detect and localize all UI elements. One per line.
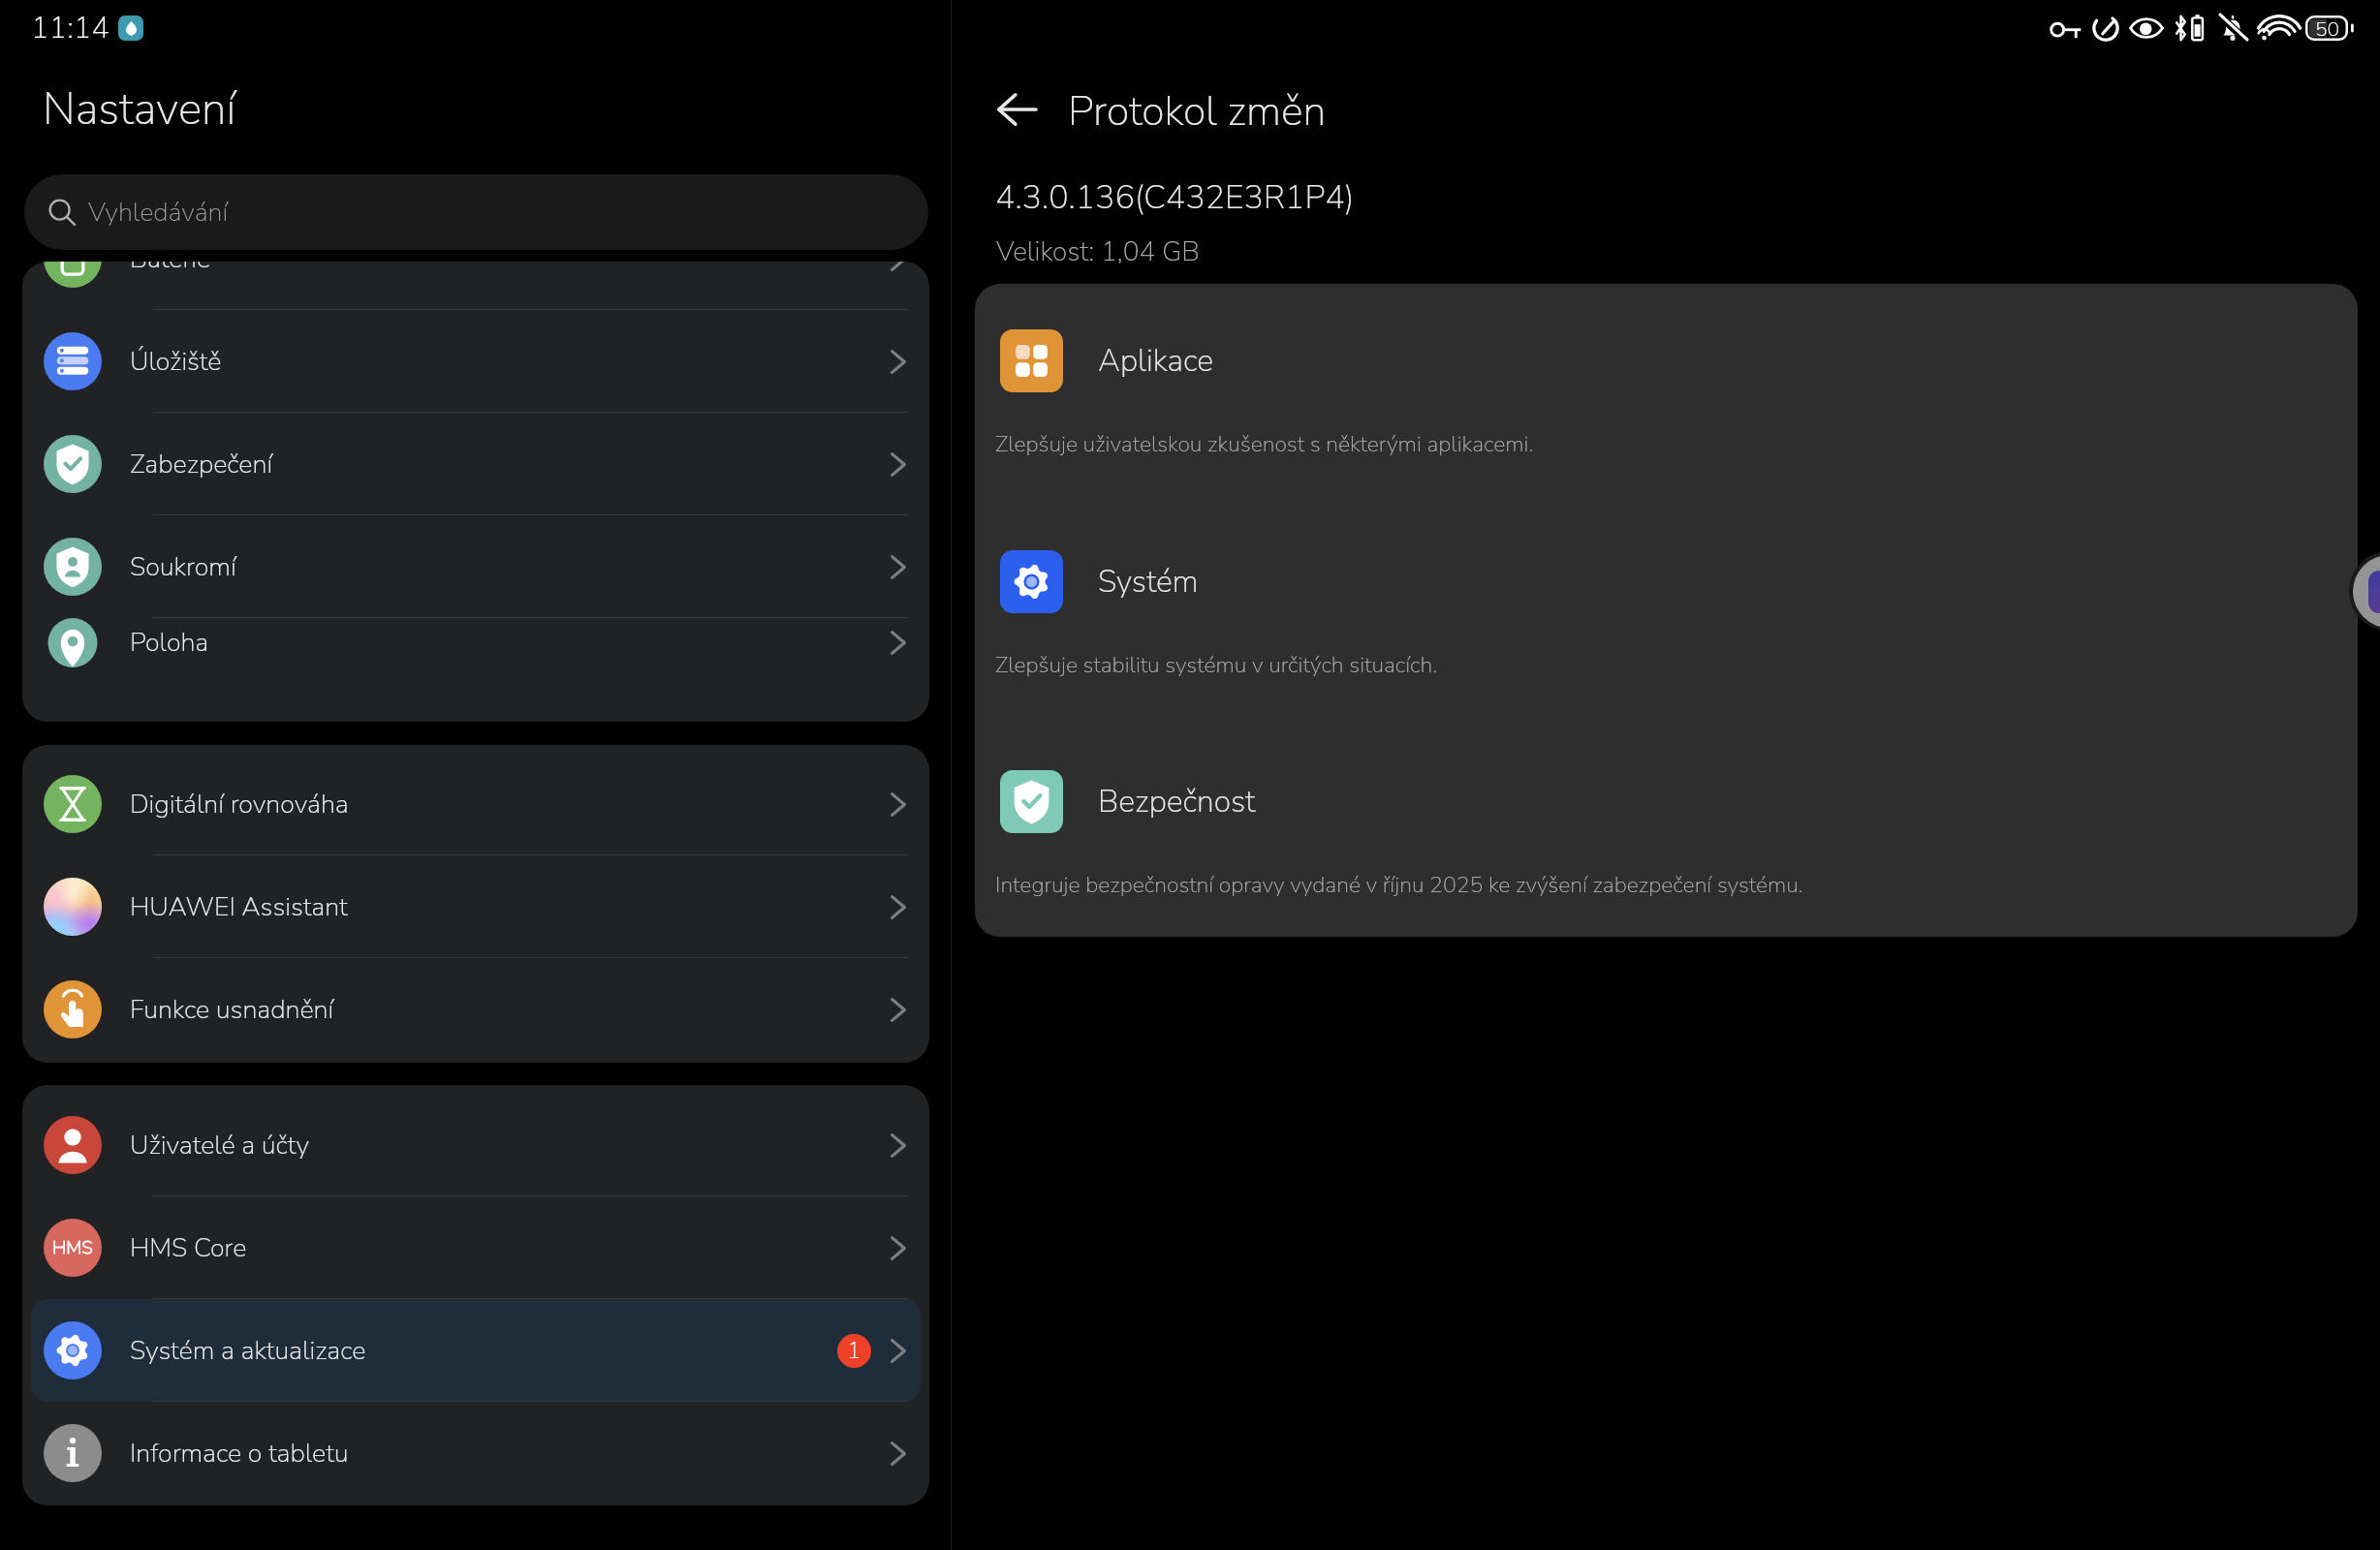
button[interactable]: Back	[974, 78, 1059, 140]
button[interactable]: Úložiště	[22, 310, 929, 413]
staticText: Funkce usnadnění	[130, 992, 334, 1028]
staticText: 1	[847, 1335, 861, 1367]
staticText: Zabezpečení	[130, 447, 273, 482]
button[interactable]: Baterie	[22, 262, 929, 310]
staticText: Zlepšuje uživatelskou zkušenost s někter…	[995, 429, 2342, 459]
button[interactable]: Zabezpečení	[22, 413, 929, 515]
staticText: HMS Core	[130, 1230, 247, 1266]
button[interactable]: HMS	[22, 1196, 929, 1299]
button[interactable]: Vyhledávání	[24, 174, 928, 250]
staticText: Vyhledávání	[88, 195, 229, 231]
button[interactable]: Uživatelé a účty	[22, 1094, 929, 1196]
staticText: HMS	[52, 1235, 93, 1260]
staticText: Aplikace	[1098, 340, 1213, 383]
button[interactable]: Soukromí	[22, 515, 929, 618]
button[interactable]: Floating app	[2349, 551, 2380, 631]
button[interactable]: HUAWEI Assistant	[22, 855, 929, 958]
staticText: Integruje bezpečnostní opravy vydané v ř…	[995, 870, 2342, 900]
staticText: Systém	[1098, 561, 1199, 604]
staticText: Uživatelé a účty	[130, 1128, 310, 1163]
staticText: Informace o tabletu	[130, 1436, 349, 1472]
staticText: Systém a aktualizace	[130, 1333, 366, 1369]
staticText: Baterie	[130, 262, 211, 277]
staticText: Zlepšuje stabilitu systému v určitých si…	[995, 650, 2342, 680]
staticText: 4.3.0.136(C432E3R1P4)	[995, 175, 1355, 220]
staticText: Soukromí	[130, 549, 236, 585]
staticText: 50	[2315, 15, 2340, 41]
button[interactable]: Informace o tabletu	[22, 1402, 929, 1504]
staticText: Poloha	[130, 625, 209, 661]
button[interactable]: Funkce usnadnění	[22, 958, 929, 1061]
button[interactable]: Poloha	[22, 618, 929, 667]
staticText: Protokol změn	[1068, 83, 1327, 140]
staticText: Nastavení	[43, 78, 236, 139]
staticText: Úložiště	[130, 344, 222, 380]
staticText: Velikost: 1,04 GB	[996, 233, 1201, 270]
staticText: Bezpečnost	[1098, 781, 1256, 823]
button[interactable]: Digitální rovnováha	[22, 753, 929, 855]
button[interactable]: Systém a aktualizace	[22, 1299, 929, 1402]
staticText: Digitální rovnováha	[130, 787, 349, 822]
staticText: 11:14	[31, 8, 110, 48]
staticText: HUAWEI Assistant	[130, 889, 348, 925]
